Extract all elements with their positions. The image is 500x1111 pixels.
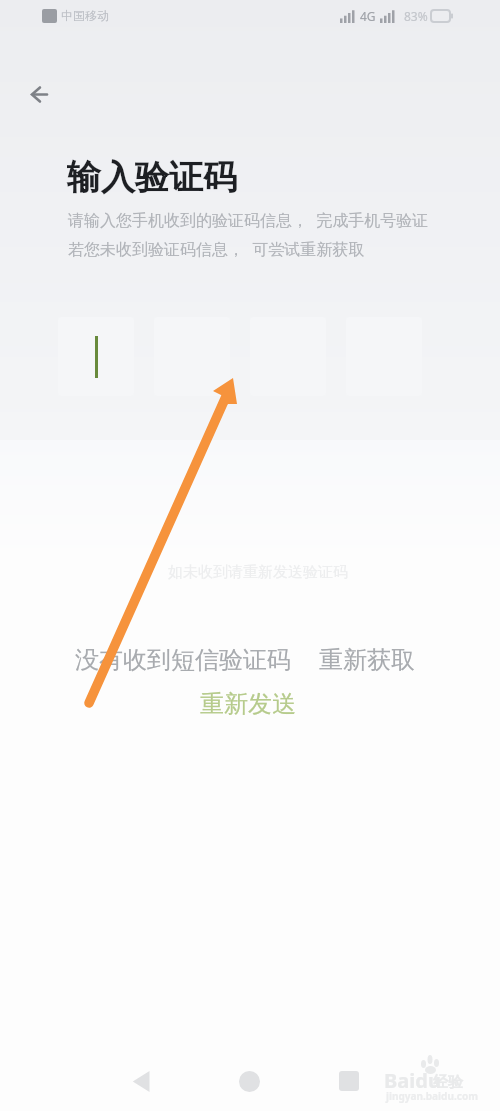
- staticText: 83%: [404, 8, 428, 24]
- staticText: 经验: [433, 1073, 463, 1092]
- staticText: 没有收到短信验证码: [75, 645, 291, 675]
- staticText: jingyan.baidu.com: [386, 1089, 478, 1103]
- button[interactable]: Back: [120, 1060, 162, 1102]
- button[interactable]: Recents: [328, 1060, 370, 1102]
- staticText: Baidu: [384, 1067, 441, 1094]
- button[interactable]: 重新发送: [200, 689, 296, 719]
- staticText: 输入验证码: [67, 156, 237, 199]
- staticText: 若您未收到验证码信息， 可尝试重新获取: [68, 238, 365, 260]
- button[interactable]: Back: [20, 75, 58, 113]
- staticText: 中国移动: [61, 8, 109, 23]
- staticText: 请输入您手机收到的验证码信息， 完成手机号验证: [68, 209, 429, 231]
- staticText: 如未收到请重新发送验证码: [168, 563, 348, 582]
- button[interactable]: [58, 317, 134, 396]
- staticText: 4G: [360, 8, 376, 24]
- button[interactable]: [154, 317, 230, 396]
- staticText: 重新获取: [319, 645, 415, 675]
- button[interactable]: Home: [228, 1060, 270, 1102]
- staticText: 重新发送: [200, 689, 296, 719]
